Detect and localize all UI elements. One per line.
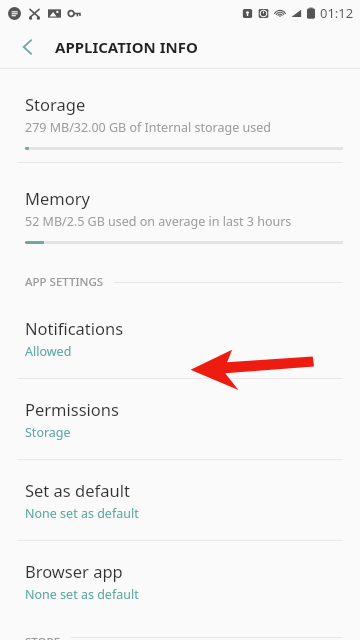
button[interactable]: Back xyxy=(10,29,46,65)
staticText: Storage xyxy=(25,424,71,441)
staticText: 279 MB/32.00 GB of Internal storage used xyxy=(25,119,271,136)
staticText: None set as default xyxy=(25,586,139,603)
button[interactable]: Browser app xyxy=(0,547,360,612)
staticText: Browser app xyxy=(25,560,123,582)
staticText: 52 MB/2.5 GB used on average in last 3 h… xyxy=(25,213,292,230)
staticText: APP SETTINGS xyxy=(25,274,104,290)
button[interactable]: Memory xyxy=(0,174,360,239)
staticText: 01:12 xyxy=(320,4,354,22)
staticText: None set as default xyxy=(25,505,139,522)
button[interactable]: Set as default xyxy=(0,466,360,531)
staticText: Storage xyxy=(25,93,86,115)
button[interactable]: Permissions xyxy=(0,385,360,450)
staticText: Allowed xyxy=(25,343,72,360)
staticText: Permissions xyxy=(25,398,119,420)
button[interactable]: Storage xyxy=(0,80,360,145)
staticText: Memory xyxy=(25,187,90,209)
button[interactable]: Notifications xyxy=(0,304,360,369)
staticText: STORE xyxy=(25,634,61,640)
staticText: APPLICATION INFO xyxy=(55,37,198,57)
staticText: Set as default xyxy=(25,479,130,501)
staticText: Notifications xyxy=(25,317,124,339)
